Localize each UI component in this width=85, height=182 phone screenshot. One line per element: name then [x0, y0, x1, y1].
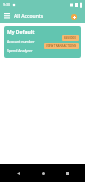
button[interactable]: Add account	[71, 14, 77, 20]
staticText: 8450000	[64, 36, 77, 40]
button[interactable]: My Default	[4, 26, 81, 58]
staticText: Account number	[7, 39, 35, 44]
staticText: VIEW TRANSACTIONS	[46, 44, 77, 48]
button[interactable]: Home	[36, 166, 50, 180]
button[interactable]: VIEW TRANSACTIONS	[44, 43, 79, 49]
staticText: Spend Analyzer	[7, 48, 33, 53]
staticText: My Default	[7, 29, 35, 36]
button[interactable]: 8450000	[62, 35, 79, 41]
staticText: 9:30	[3, 2, 10, 7]
staticText: All Accounts	[14, 13, 44, 20]
button[interactable]: Menu	[0, 9, 14, 23]
button[interactable]: Back	[11, 166, 25, 180]
button[interactable]: Recents	[60, 166, 74, 180]
